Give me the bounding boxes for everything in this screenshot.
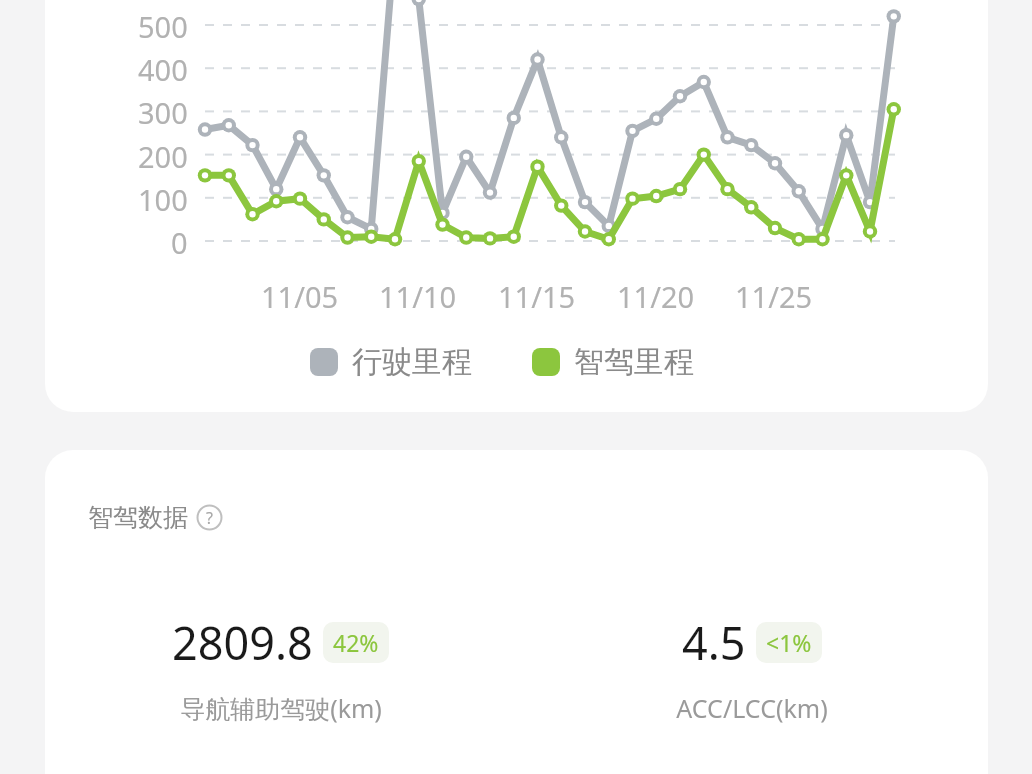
staticText: ? [206, 507, 213, 529]
staticText: <1% [766, 627, 812, 658]
staticText: 4.5 [682, 612, 746, 673]
button[interactable]: 智驾数据 [88, 502, 223, 533]
staticText: 11/25 [735, 277, 813, 316]
button[interactable]: 智驾里程 [532, 343, 694, 381]
staticText: 11/10 [379, 277, 457, 316]
button[interactable]: 2809.8 [45, 612, 516, 725]
staticText: 行驶里程 [352, 343, 472, 381]
staticText: 100 [138, 180, 188, 219]
staticText: ACC/LCC(km) [676, 691, 828, 725]
staticText: 11/05 [261, 277, 339, 316]
staticText: 智驾数据 [88, 502, 188, 533]
staticText: 200 [138, 137, 188, 176]
staticText: 42% [333, 627, 379, 658]
button[interactable]: 行驶里程 [310, 343, 472, 381]
staticText: 300 [138, 93, 188, 132]
staticText: 11/15 [498, 277, 576, 316]
staticText: 0 [171, 223, 188, 262]
button[interactable]: 4.5 [516, 612, 988, 725]
staticText: 2809.8 [172, 612, 313, 673]
staticText: 400 [138, 50, 188, 89]
staticText: 导航辅助驾驶(km) [180, 691, 382, 725]
staticText: 500 [138, 7, 188, 46]
other: Help [196, 504, 223, 531]
staticText: 智驾里程 [574, 343, 694, 381]
staticText: 11/20 [617, 277, 695, 316]
